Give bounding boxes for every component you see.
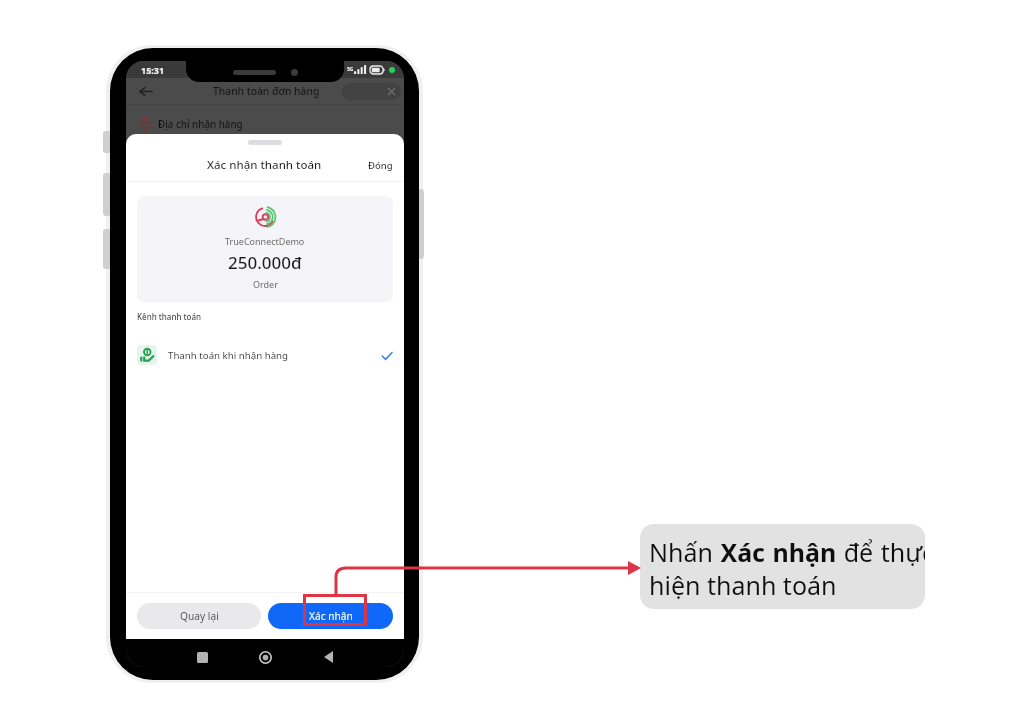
staticText: Xác nhận [309,609,353,623]
staticText: Xác nhận thanh toán [207,157,322,173]
staticText: 5G [347,66,354,73]
button[interactable]: Home [258,650,272,664]
button[interactable]: Recents [195,650,209,664]
staticText: 250.000đ [228,251,302,274]
staticText: Đóng [368,159,393,172]
button[interactable]: Quay lại [137,603,261,629]
button[interactable]: Đóng [362,153,404,178]
staticText: Thanh toán đơn hàng [213,84,320,98]
button[interactable]: Back [321,650,335,664]
staticText: Quay lại [180,609,219,623]
staticText: 15:31 [141,64,165,76]
button[interactable]: Xác nhận [268,603,393,629]
staticText: Địa chỉ nhận hàng [158,118,243,131]
staticText: Thanh toán khi nhận hàng [168,349,289,362]
staticText: TrueConnectDemo [225,235,305,247]
button[interactable]: Close [342,83,401,100]
button[interactable]: Thanh toán khi nhận hàng [126,340,404,370]
staticText: Nhấn Xác nhận để thực hiện thanh toán [649,535,925,602]
staticText: Order [253,278,278,290]
button[interactable]: Back [135,81,155,101]
staticText: Kênh thanh toán [137,311,202,322]
